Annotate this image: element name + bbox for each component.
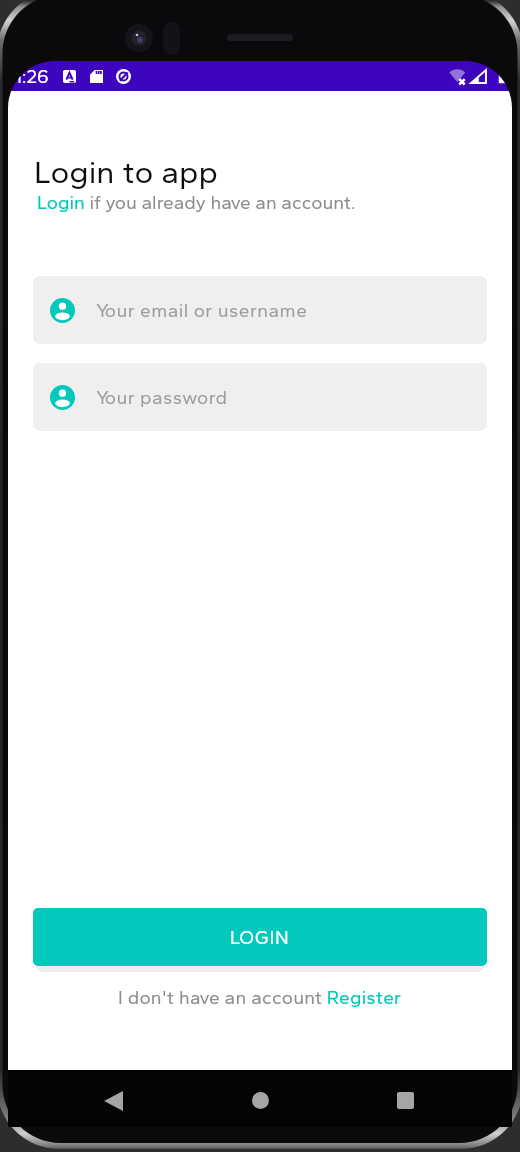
button[interactable]: Back [72, 1072, 154, 1129]
staticText: Login to app [34, 153, 218, 191]
staticText: Your email or username [96, 299, 308, 322]
button[interactable]: Your password [33, 363, 487, 431]
button[interactable]: Home [219, 1072, 301, 1129]
staticText: 11:26 [8, 65, 49, 88]
button[interactable]: Your email or username [33, 276, 487, 344]
staticText: LOGIN [230, 926, 290, 949]
staticText: Login if you already have an account. [37, 191, 356, 214]
button[interactable]: I don't have an account Register [118, 986, 402, 1009]
staticText: Your password [96, 386, 228, 409]
button[interactable]: Recent apps [364, 1072, 446, 1129]
button[interactable]: LOGIN [33, 908, 487, 966]
